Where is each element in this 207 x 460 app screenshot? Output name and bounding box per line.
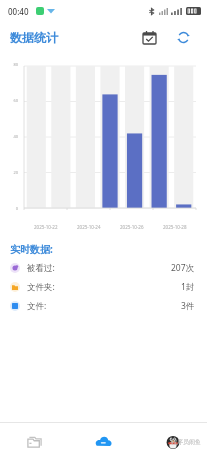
button[interactable]: 文件夹: — [0, 277, 207, 296]
staticText: 数据统计 — [10, 30, 58, 45]
staticText: 0 — [4, 206, 18, 211]
staticText: 文件: — [27, 300, 47, 312]
button[interactable]: 文件 — [0, 423, 69, 460]
staticText: 程序员闹鱼 — [171, 438, 201, 446]
staticText: 2025-10-24 — [77, 224, 101, 230]
staticText: 被看过: — [27, 262, 55, 274]
staticText: 2025-10-22 — [34, 224, 58, 230]
button[interactable]: 被看过: — [0, 258, 207, 277]
staticText: 40 — [4, 134, 18, 139]
staticText: 60 — [4, 98, 18, 103]
staticText: 207次 — [171, 262, 195, 274]
button[interactable]: 云盘 — [69, 423, 138, 460]
staticText: 00:40 — [8, 6, 29, 17]
button[interactable]: 文件: — [0, 296, 207, 315]
staticText: 20 — [4, 170, 18, 175]
staticText: 3件 — [181, 300, 195, 312]
button[interactable]: 刷新 — [171, 25, 195, 49]
staticText: 实时数据: — [10, 242, 53, 256]
staticText: 1封 — [181, 281, 195, 293]
staticText: 2025-10-28 — [163, 224, 187, 230]
staticText: 2025-10-26 — [120, 224, 144, 230]
staticText: 文件夹: — [27, 281, 55, 293]
button[interactable]: 选择日期 — [137, 25, 161, 49]
button[interactable]: 我的 — [138, 423, 207, 460]
staticText: 80 — [4, 62, 18, 67]
